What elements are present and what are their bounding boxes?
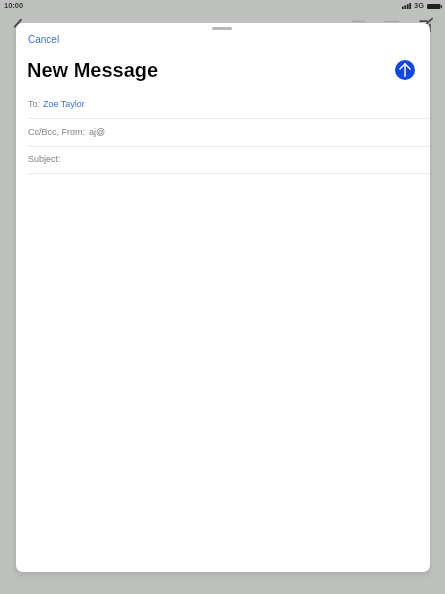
staticText: Subject:	[28, 154, 61, 164]
button[interactable]	[16, 118, 430, 146]
staticText: 3G	[414, 1, 425, 9]
staticText: aj@	[89, 127, 106, 137]
staticText: To:	[28, 99, 41, 109]
button[interactable]	[16, 146, 430, 174]
staticText: 10:00	[4, 1, 24, 9]
staticText: Cancel	[28, 34, 60, 45]
button[interactable]: Send	[395, 60, 415, 80]
button[interactable]: Cancel	[22, 31, 54, 42]
staticText: Cc/Bcc, From:	[28, 127, 86, 137]
staticText: New Message	[27, 59, 159, 81]
staticText: Zoe Taylor	[43, 99, 85, 109]
button[interactable]	[16, 91, 430, 119]
